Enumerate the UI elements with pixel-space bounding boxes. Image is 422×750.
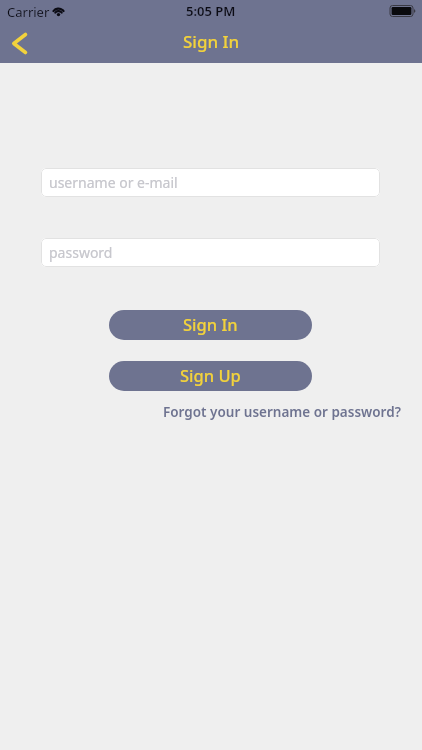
button[interactable]: Sign Up [109,361,312,391]
staticText: 5:05 PM [186,2,236,20]
button[interactable]: Sign In [109,310,312,340]
button[interactable]: password [41,238,380,267]
staticText: Carrier [7,3,50,21]
button[interactable]: Forgot your username or password? [163,403,401,421]
staticText: password [49,243,113,262]
button[interactable] [12,33,27,54]
staticText: Sign Up [180,364,241,386]
staticText: Sign In [183,30,240,53]
button[interactable]: username or e-mail [41,168,380,197]
staticText: Sign In [183,313,238,335]
staticText: username or e-mail [49,173,178,192]
